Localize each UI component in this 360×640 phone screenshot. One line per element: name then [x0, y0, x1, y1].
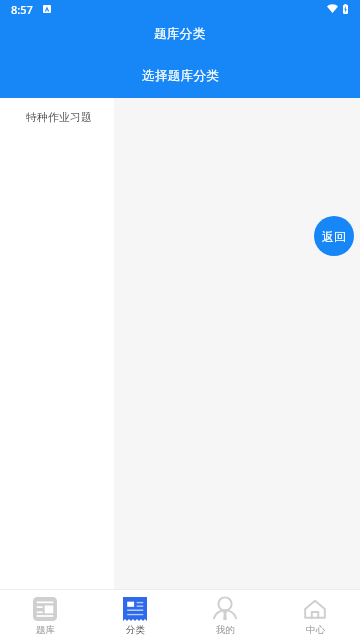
button[interactable]: 我的 [180, 590, 270, 640]
button[interactable]: 分类 [90, 590, 180, 640]
staticText: 选择题库分类 [142, 68, 219, 84]
staticText: 特种作业习题 [26, 110, 92, 124]
button[interactable]: 中心 [270, 590, 360, 640]
staticText: 题库 [36, 624, 55, 636]
staticText: 8:57 [11, 2, 33, 17]
staticText: 返回 [322, 229, 346, 244]
button[interactable]: 返回 [314, 216, 354, 256]
button[interactable]: 题库 [0, 590, 90, 640]
staticText: 我的 [216, 624, 235, 636]
staticText: 分类 [126, 624, 145, 636]
staticText: 题库分类 [154, 26, 206, 42]
button[interactable]: 特种作业习题 [0, 98, 114, 136]
staticText: 中心 [306, 624, 325, 636]
